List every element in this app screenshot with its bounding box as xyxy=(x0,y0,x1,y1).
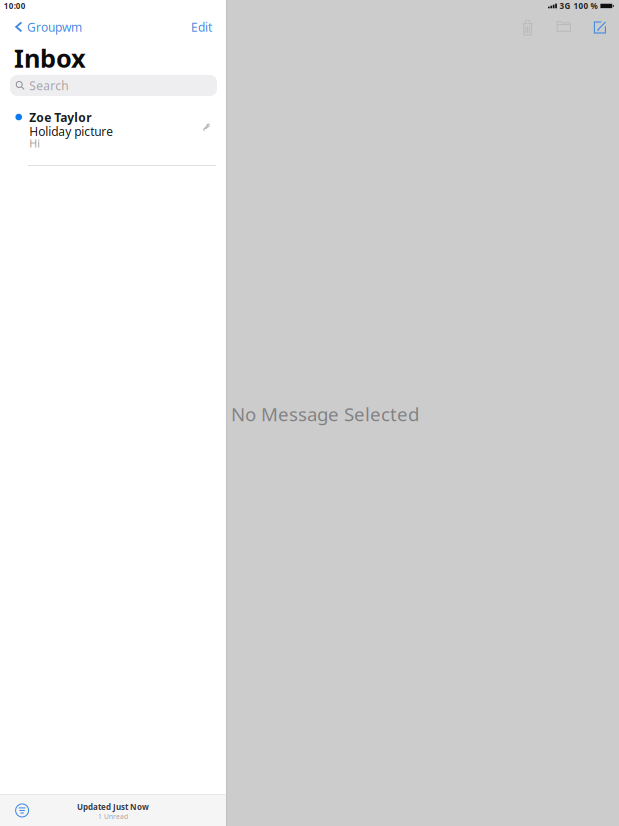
button[interactable]: Delete xyxy=(511,13,545,37)
staticText: Updated Just Now xyxy=(77,802,149,812)
staticText: Zoe Taylor xyxy=(29,109,91,125)
button[interactable]: Compose xyxy=(585,13,615,38)
staticText: Holiday picture xyxy=(29,123,113,139)
button[interactable]: Move to Folder xyxy=(548,13,580,38)
button[interactable]: Search xyxy=(10,75,217,96)
staticText: No Message Selected xyxy=(231,402,419,426)
staticText: 1 Unread xyxy=(98,812,128,821)
staticText: Inbox xyxy=(14,41,86,75)
staticText: Groupwm xyxy=(27,19,82,35)
staticText: Search xyxy=(29,77,68,93)
staticText: 3G xyxy=(559,1,570,11)
staticText: 100 % xyxy=(573,1,597,11)
staticText: Edit xyxy=(191,19,212,35)
button[interactable]: Groupwm xyxy=(0,15,92,39)
button[interactable]: Edit xyxy=(179,15,226,39)
staticText: Hi xyxy=(29,136,40,150)
button[interactable]: Filter xyxy=(0,796,38,825)
staticText: 10:00 xyxy=(4,1,26,11)
button[interactable]: Zoe Taylor xyxy=(0,107,226,166)
